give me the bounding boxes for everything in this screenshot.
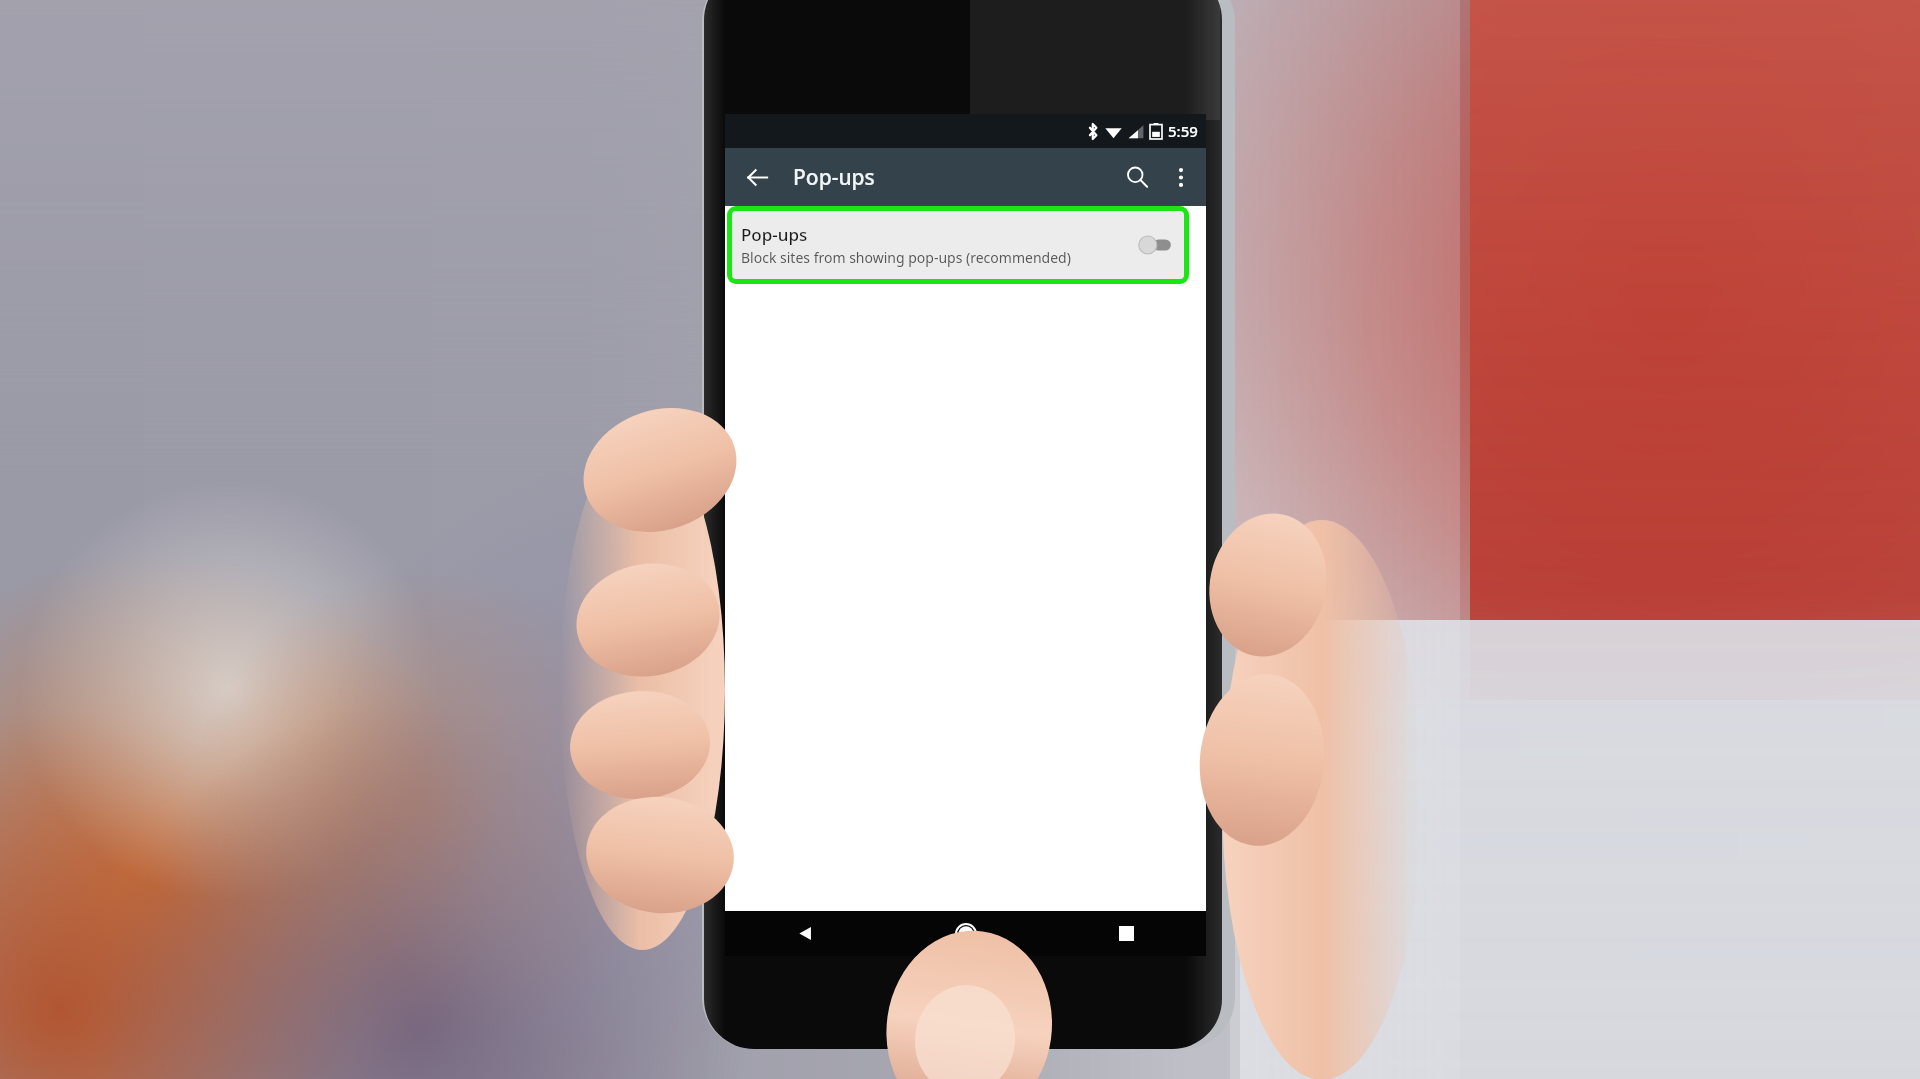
button[interactable]: Recent apps [1046, 911, 1206, 956]
button[interactable]: Back [725, 911, 886, 956]
staticText: Block sites from showing pop-ups (recomm… [741, 248, 1071, 267]
staticText: Pop-ups [793, 163, 875, 192]
button[interactable]: Pop-ups [732, 211, 1184, 279]
button[interactable]: Pop-ups toggle, off [1132, 225, 1178, 265]
staticText: Pop-ups [741, 223, 808, 246]
button[interactable]: More options [1160, 156, 1202, 198]
button[interactable]: Navigate up [735, 155, 779, 199]
button[interactable]: Search [1114, 154, 1160, 200]
button[interactable]: Home [886, 911, 1046, 956]
staticText: 5:59 [1168, 121, 1198, 141]
